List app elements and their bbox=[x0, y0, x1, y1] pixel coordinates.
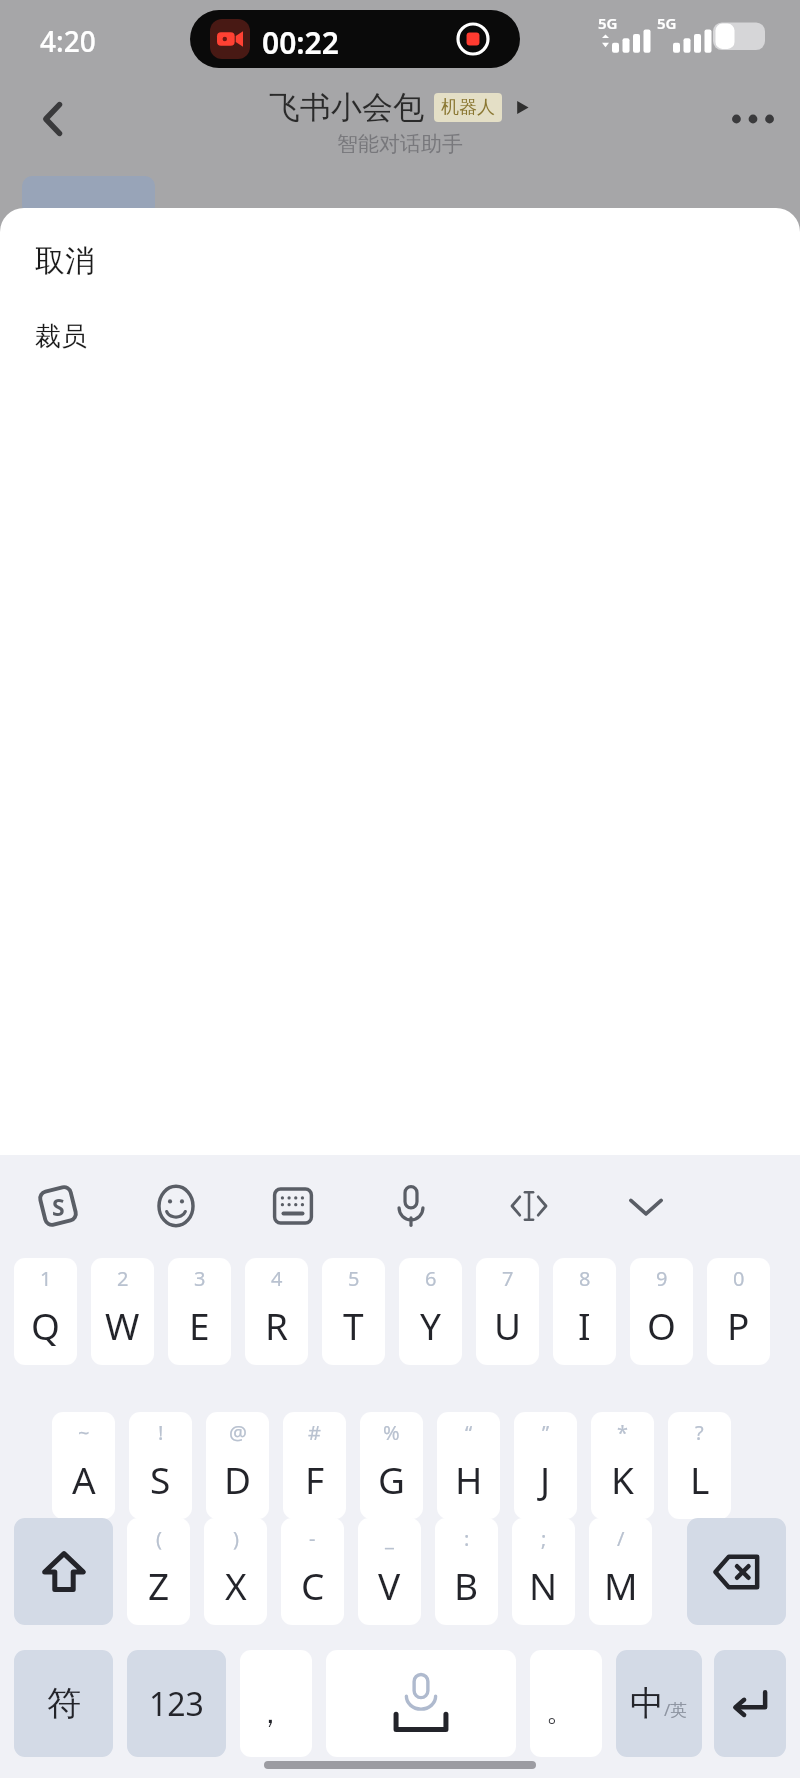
staticText: E bbox=[189, 1300, 210, 1350]
button[interactable]: 2 bbox=[91, 1258, 154, 1365]
staticText: 0 bbox=[733, 1265, 745, 1292]
staticText: 。 bbox=[546, 1694, 574, 1729]
staticText: W bbox=[105, 1300, 140, 1350]
staticText: P bbox=[727, 1300, 750, 1350]
button[interactable]: 符 bbox=[14, 1650, 113, 1757]
staticText: 5G bbox=[657, 13, 677, 33]
staticText: _ bbox=[385, 1525, 394, 1552]
button[interactable]: Keyboard layout bbox=[262, 1175, 324, 1237]
staticText: “ bbox=[465, 1419, 473, 1446]
button[interactable]: ) bbox=[204, 1518, 267, 1625]
button[interactable]: 3 bbox=[168, 1258, 231, 1365]
button[interactable]: 5 bbox=[322, 1258, 385, 1365]
button[interactable]: 123 bbox=[127, 1650, 226, 1757]
staticText: ( bbox=[156, 1525, 162, 1552]
button[interactable]: ; bbox=[512, 1518, 575, 1625]
staticText: T bbox=[343, 1300, 364, 1350]
button[interactable]: * bbox=[591, 1412, 654, 1519]
staticText: V bbox=[378, 1560, 401, 1610]
button[interactable]: ( bbox=[127, 1518, 190, 1625]
button[interactable]: ~ bbox=[52, 1412, 115, 1519]
staticText: 5 bbox=[348, 1265, 360, 1292]
button[interactable]: / bbox=[589, 1518, 652, 1625]
button[interactable]: - bbox=[281, 1518, 344, 1625]
button[interactable]: ， bbox=[240, 1650, 312, 1757]
button[interactable]: ! bbox=[129, 1412, 192, 1519]
button[interactable]: Shift bbox=[14, 1518, 113, 1625]
button[interactable]: 0 bbox=[707, 1258, 770, 1365]
button[interactable]: 8 bbox=[553, 1258, 616, 1365]
button[interactable]: 1 bbox=[14, 1258, 77, 1365]
button[interactable]: Voice input bbox=[380, 1175, 442, 1237]
button[interactable]: Backspace bbox=[687, 1518, 786, 1625]
button[interactable]: Emoji bbox=[145, 1175, 207, 1237]
staticText: S bbox=[52, 1191, 65, 1222]
staticText: * bbox=[617, 1419, 629, 1446]
button[interactable]: % bbox=[360, 1412, 423, 1519]
staticText: J bbox=[540, 1454, 551, 1504]
button[interactable]: 4 bbox=[245, 1258, 308, 1365]
button[interactable]: ” bbox=[514, 1412, 577, 1519]
button[interactable]: Enter bbox=[714, 1650, 786, 1757]
button[interactable]: @ bbox=[206, 1412, 269, 1519]
button[interactable]: Switch Chinese English bbox=[616, 1650, 702, 1757]
staticText: H bbox=[455, 1454, 483, 1504]
button[interactable]: Sogou input bbox=[27, 1175, 89, 1237]
staticText: ， bbox=[256, 1696, 284, 1731]
staticText: F bbox=[305, 1454, 325, 1504]
staticText: 2 bbox=[117, 1265, 129, 1292]
button[interactable]: More options bbox=[722, 88, 784, 150]
staticText: /英 bbox=[664, 1698, 688, 1721]
staticText: @ bbox=[229, 1419, 247, 1446]
button[interactable]: 7 bbox=[476, 1258, 539, 1365]
button[interactable]: 。 bbox=[530, 1650, 602, 1757]
staticText: 智能对话助手 bbox=[337, 131, 463, 157]
staticText: I bbox=[578, 1300, 591, 1350]
staticText: 7 bbox=[502, 1265, 514, 1292]
staticText: G bbox=[378, 1454, 405, 1504]
staticText: 00:22 bbox=[262, 22, 339, 63]
button[interactable]: Back bbox=[22, 88, 84, 150]
staticText: S bbox=[150, 1454, 171, 1504]
staticText: % bbox=[383, 1419, 400, 1446]
staticText: ! bbox=[158, 1419, 164, 1446]
button[interactable]: “ bbox=[437, 1412, 500, 1519]
staticText: 6 bbox=[425, 1265, 437, 1292]
staticText: Y bbox=[420, 1300, 441, 1350]
staticText: 3 bbox=[194, 1265, 206, 1292]
button[interactable]: ? bbox=[668, 1412, 731, 1519]
staticText: L bbox=[690, 1454, 710, 1504]
button[interactable]: 9 bbox=[630, 1258, 693, 1365]
staticText: R bbox=[265, 1300, 289, 1350]
staticText: 5G bbox=[598, 13, 618, 33]
staticText: B bbox=[454, 1560, 479, 1610]
staticText: 4:20 bbox=[40, 22, 96, 60]
staticText: 8 bbox=[579, 1265, 591, 1292]
button[interactable]: 取消 bbox=[35, 242, 95, 280]
button[interactable]: Stop recording bbox=[456, 22, 490, 56]
staticText: 4 bbox=[271, 1265, 283, 1292]
button[interactable]: Space bbox=[326, 1650, 516, 1757]
button[interactable]: Move cursor bbox=[498, 1175, 560, 1237]
staticText: 符 bbox=[47, 1682, 81, 1725]
staticText: 飞书小会包 bbox=[269, 88, 424, 127]
staticText: C bbox=[301, 1560, 325, 1610]
button[interactable]: # bbox=[283, 1412, 346, 1519]
staticText: ” bbox=[542, 1419, 550, 1446]
staticText: Z bbox=[148, 1560, 170, 1610]
button[interactable]: Hide keyboard bbox=[615, 1175, 677, 1237]
staticText: ~ bbox=[78, 1419, 90, 1446]
button[interactable]: _ bbox=[358, 1518, 421, 1625]
staticText: - bbox=[309, 1525, 316, 1552]
staticText: U bbox=[494, 1300, 522, 1350]
button[interactable]: 6 bbox=[399, 1258, 462, 1365]
staticText: / bbox=[617, 1525, 625, 1552]
button[interactable]: : bbox=[435, 1518, 498, 1625]
staticText: X bbox=[225, 1560, 247, 1610]
button[interactable]: 裁员 bbox=[35, 320, 87, 353]
staticText: 9 bbox=[656, 1265, 668, 1292]
staticText: Q bbox=[31, 1300, 60, 1350]
staticText: ) bbox=[233, 1525, 239, 1552]
staticText: M bbox=[604, 1560, 638, 1610]
staticText: 1 bbox=[40, 1265, 52, 1292]
